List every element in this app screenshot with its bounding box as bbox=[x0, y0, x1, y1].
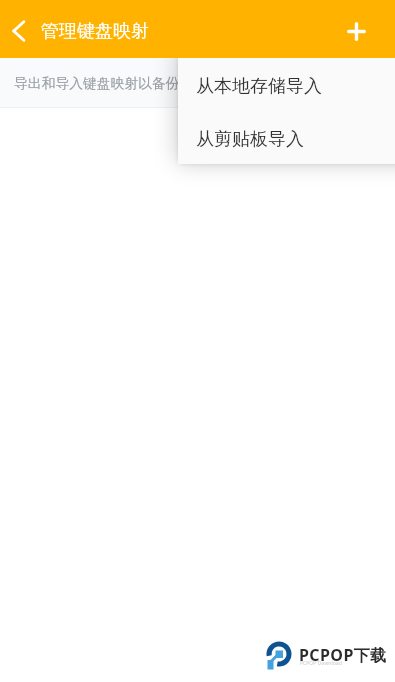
staticText: PCPOP下载 bbox=[299, 644, 387, 666]
button[interactable]: Add bbox=[337, 12, 375, 50]
staticText: 导出和导入键盘映射以备份或共享您的设置 bbox=[14, 75, 277, 92]
button[interactable]: 从本地存储导入 bbox=[178, 58, 395, 111]
button[interactable]: Back bbox=[0, 12, 38, 50]
staticText: 从剪贴板导入 bbox=[196, 128, 304, 151]
button[interactable]: 从剪贴板导入 bbox=[178, 111, 395, 164]
staticText: 从本地存储导入 bbox=[196, 75, 322, 98]
staticText: PCPOP Download bbox=[300, 660, 343, 666]
staticText: 管理键盘映射 bbox=[41, 20, 149, 43]
